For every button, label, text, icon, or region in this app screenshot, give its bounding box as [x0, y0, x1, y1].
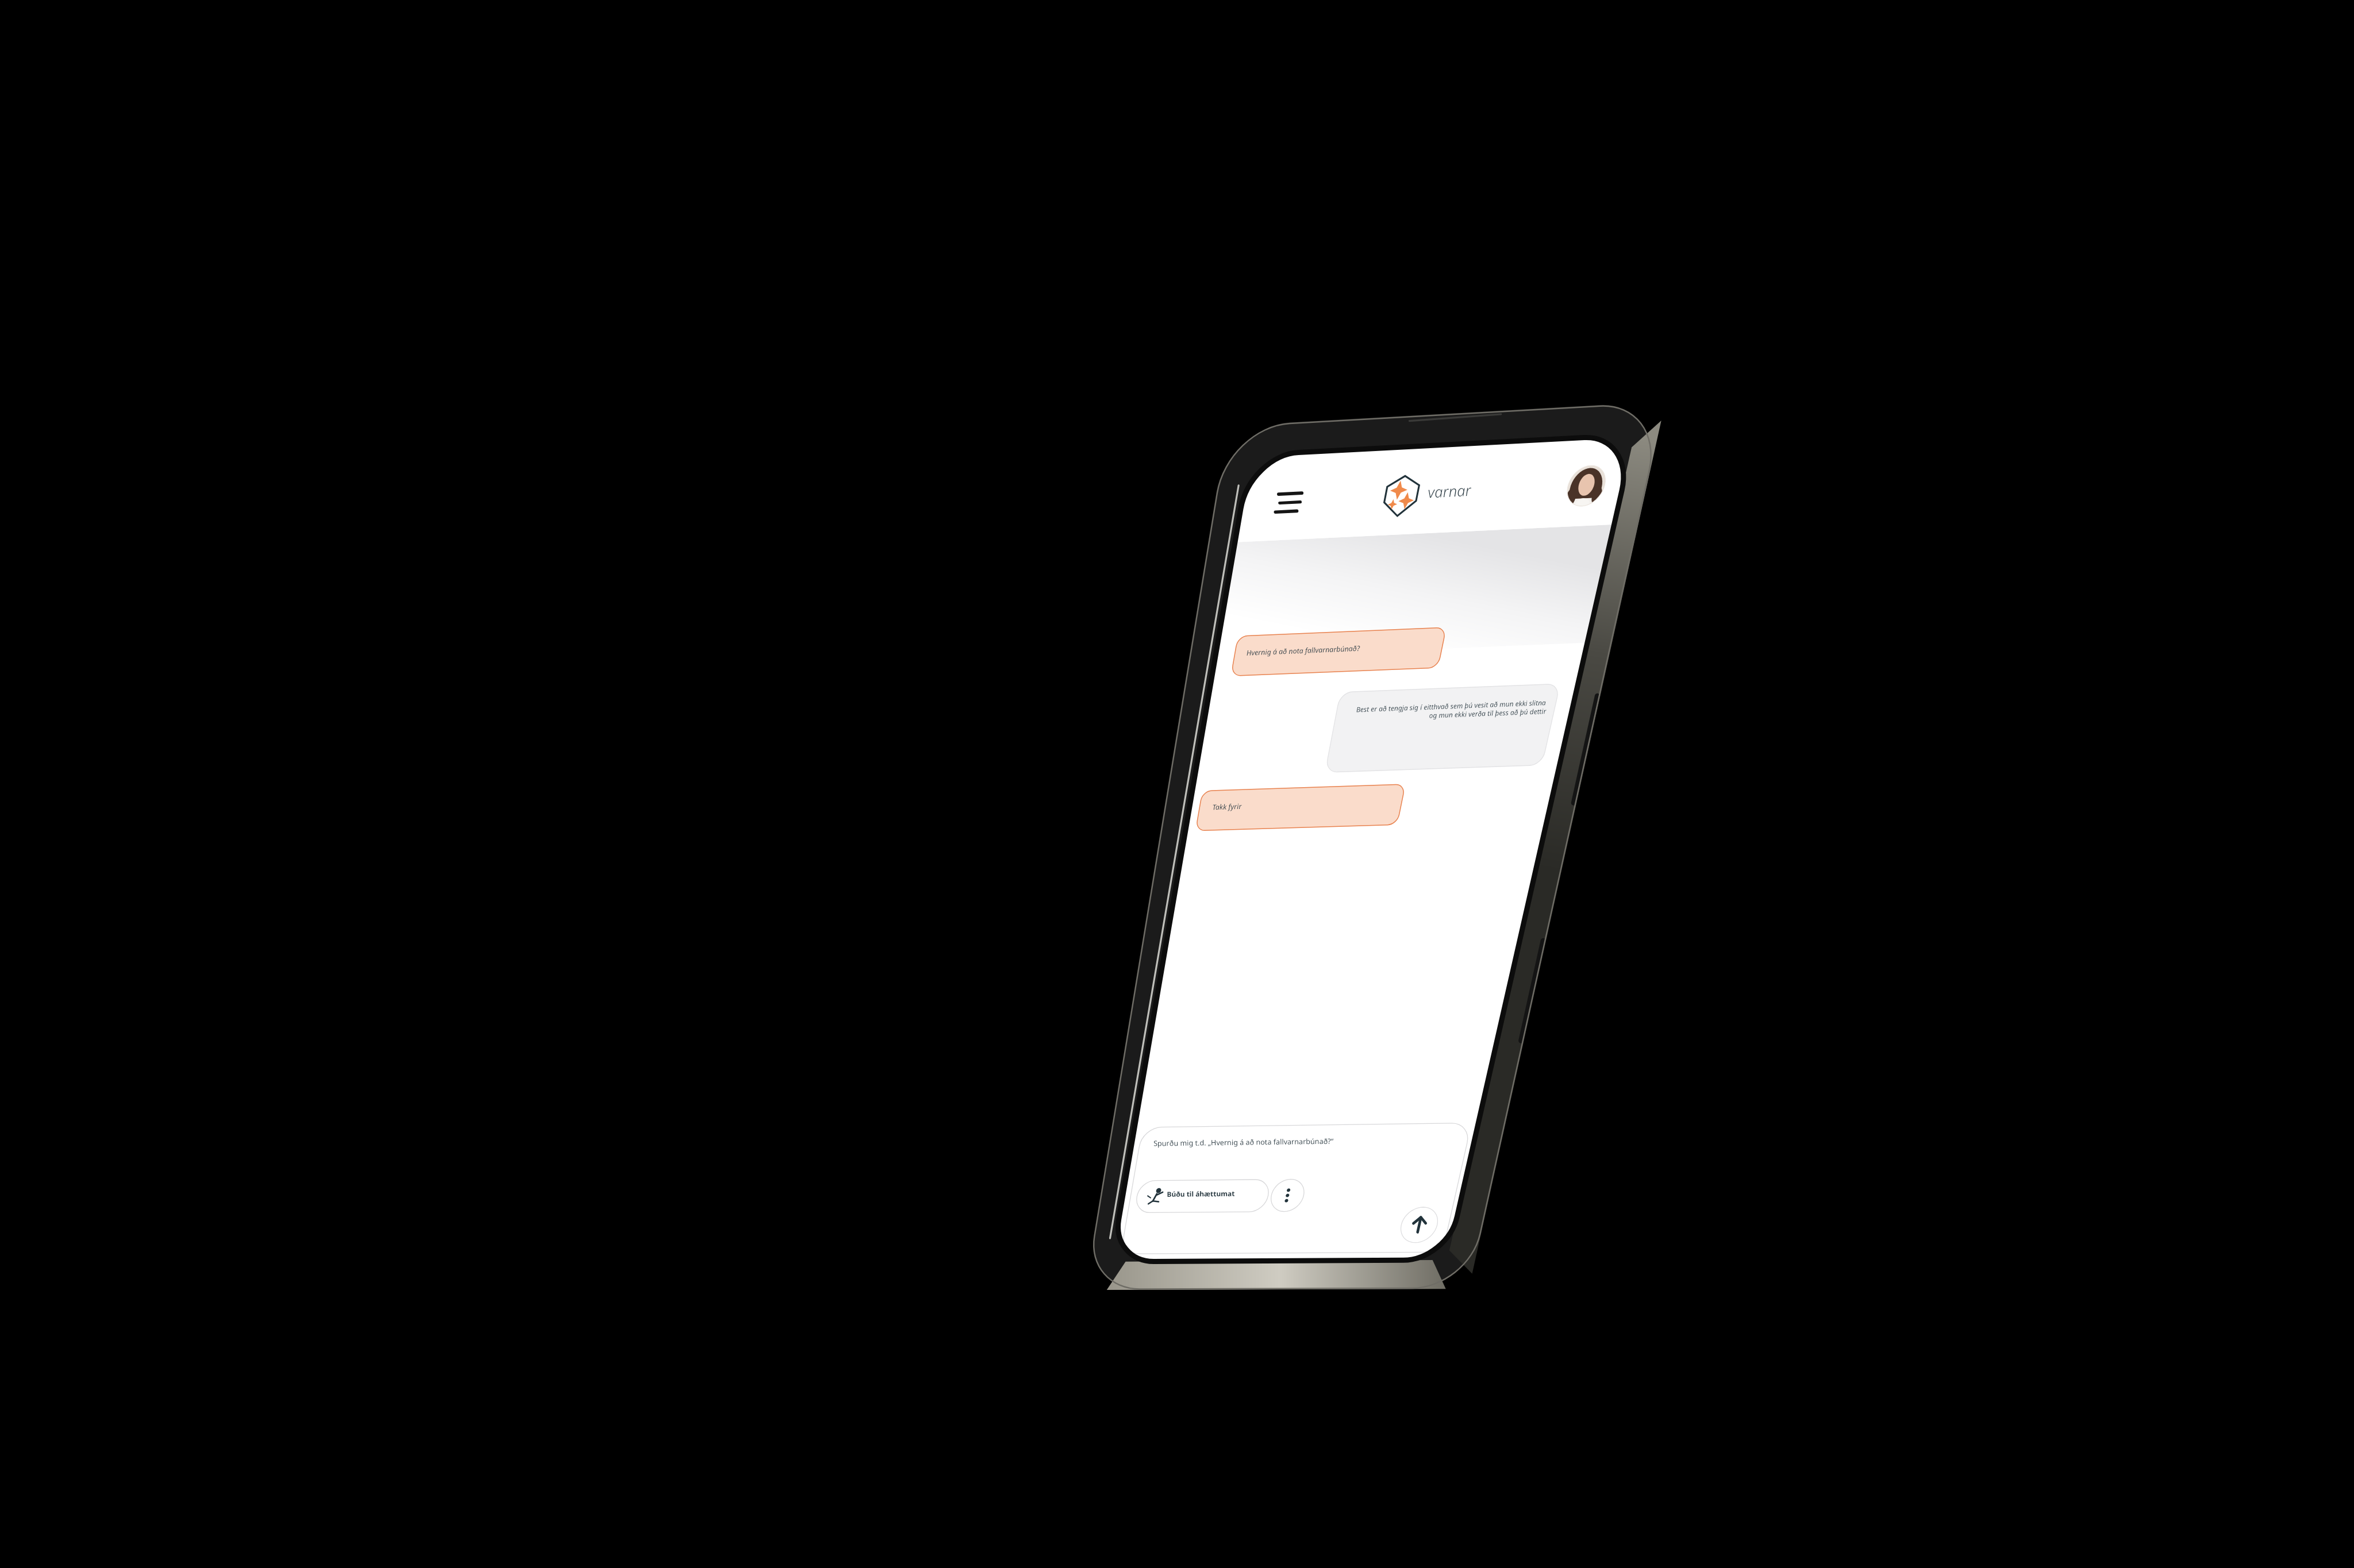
button[interactable]: Varnar chat assistant phone mockup [0, 0, 2354, 1568]
